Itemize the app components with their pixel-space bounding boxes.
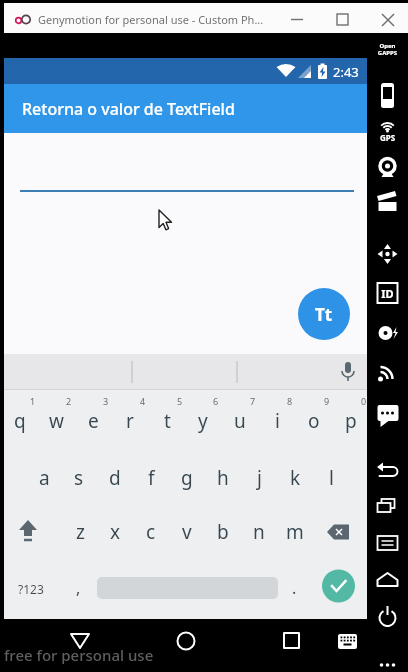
button[interactable]: x bbox=[97, 518, 133, 546]
button[interactable]: g bbox=[169, 464, 205, 492]
staticText: s bbox=[74, 465, 84, 491]
button[interactable] bbox=[369, 363, 406, 397]
staticText: Tt bbox=[315, 303, 333, 326]
button[interactable]: m bbox=[277, 518, 313, 546]
button[interactable]: r bbox=[112, 407, 148, 435]
staticText: f bbox=[148, 465, 155, 491]
staticText: z bbox=[76, 519, 85, 545]
button[interactable]: n bbox=[241, 518, 277, 546]
button[interactable]: Tt bbox=[298, 288, 350, 340]
button[interactable]: w bbox=[38, 407, 74, 435]
staticText: 4 bbox=[140, 395, 146, 407]
button[interactable]: u bbox=[222, 407, 258, 435]
button[interactable] bbox=[60, 623, 100, 663]
staticText: o bbox=[308, 408, 320, 434]
button[interactable]: c bbox=[133, 518, 169, 546]
button[interactable] bbox=[369, 75, 406, 109]
button[interactable] bbox=[10, 518, 48, 546]
staticText: 5 bbox=[177, 395, 183, 407]
button[interactable] bbox=[320, 570, 358, 602]
staticText: ?123 bbox=[18, 581, 44, 597]
button[interactable]: h bbox=[205, 464, 241, 492]
button[interactable]: b bbox=[205, 518, 241, 546]
staticText: q bbox=[14, 408, 26, 434]
staticText: 1 bbox=[30, 395, 36, 407]
staticText: , bbox=[76, 577, 81, 599]
button[interactable]: d bbox=[97, 464, 133, 492]
staticText: 0 bbox=[361, 395, 367, 407]
staticText: e bbox=[88, 408, 99, 434]
staticText: m bbox=[286, 519, 304, 545]
button[interactable] bbox=[332, 623, 366, 663]
button[interactable] bbox=[272, 623, 312, 663]
staticText: a bbox=[39, 465, 50, 491]
button[interactable] bbox=[328, 6, 358, 32]
button[interactable]: f bbox=[133, 464, 169, 492]
staticText: 7 bbox=[250, 395, 256, 407]
staticText: 2 bbox=[66, 395, 72, 407]
button[interactable]: k bbox=[277, 464, 313, 492]
staticText: . bbox=[292, 577, 297, 599]
button[interactable]: a bbox=[26, 464, 62, 492]
button[interactable] bbox=[320, 518, 358, 546]
staticText: n bbox=[253, 519, 265, 545]
staticText: y bbox=[198, 408, 208, 434]
staticText: 3 bbox=[103, 395, 109, 407]
staticText: v bbox=[182, 519, 192, 545]
button[interactable] bbox=[282, 6, 312, 32]
button[interactable] bbox=[369, 219, 406, 253]
button[interactable] bbox=[166, 623, 206, 663]
staticText: Genymotion for personal use - Custom Ph.… bbox=[38, 12, 264, 27]
button[interactable]: Retorna o valor de TextField bbox=[4, 84, 367, 133]
button[interactable] bbox=[4, 354, 367, 390]
button[interactable]: e bbox=[75, 407, 111, 435]
button[interactable] bbox=[369, 291, 406, 325]
staticText: g bbox=[181, 465, 193, 491]
staticText: 8 bbox=[287, 395, 293, 407]
staticText: i bbox=[275, 408, 280, 434]
staticText: p bbox=[345, 408, 357, 434]
button[interactable] bbox=[369, 399, 406, 433]
button[interactable] bbox=[369, 147, 406, 181]
staticText: GPS bbox=[367, 132, 408, 143]
staticText: 6 bbox=[213, 395, 219, 407]
staticText: b bbox=[217, 519, 229, 545]
button[interactable]: v bbox=[169, 518, 205, 546]
button[interactable]: . bbox=[276, 574, 312, 602]
button[interactable]: i bbox=[259, 407, 295, 435]
staticText: w bbox=[49, 408, 64, 434]
button[interactable] bbox=[369, 327, 406, 361]
button[interactable] bbox=[373, 6, 403, 32]
button[interactable]: y bbox=[185, 407, 221, 435]
staticText: c bbox=[146, 519, 156, 545]
staticText: d bbox=[109, 465, 121, 491]
button[interactable]: o bbox=[296, 407, 332, 435]
staticText: l bbox=[329, 465, 334, 491]
staticText: j bbox=[257, 465, 262, 491]
staticText: k bbox=[290, 465, 301, 491]
button[interactable]: , bbox=[60, 574, 96, 602]
button[interactable] bbox=[369, 435, 406, 469]
staticText: 9 bbox=[324, 395, 330, 407]
button[interactable] bbox=[369, 255, 406, 289]
staticText: Open GAPPS bbox=[367, 42, 408, 57]
staticText: x bbox=[110, 519, 121, 545]
button[interactable]: s bbox=[61, 464, 97, 492]
staticText: Retorna o valor de TextField bbox=[22, 98, 235, 120]
button[interactable]: l bbox=[313, 464, 349, 492]
staticText: ID bbox=[367, 286, 408, 301]
button[interactable]: p bbox=[333, 407, 369, 435]
button[interactable]: t bbox=[149, 407, 185, 435]
staticText: r bbox=[126, 408, 134, 434]
button[interactable] bbox=[369, 183, 406, 217]
staticText: t bbox=[164, 408, 171, 434]
button[interactable]: z bbox=[62, 518, 98, 546]
button[interactable] bbox=[369, 471, 406, 505]
button[interactable]: j bbox=[241, 464, 277, 492]
staticText: h bbox=[217, 465, 229, 491]
button[interactable]: q bbox=[2, 407, 38, 435]
button[interactable] bbox=[369, 111, 406, 145]
staticText: u bbox=[234, 408, 246, 434]
